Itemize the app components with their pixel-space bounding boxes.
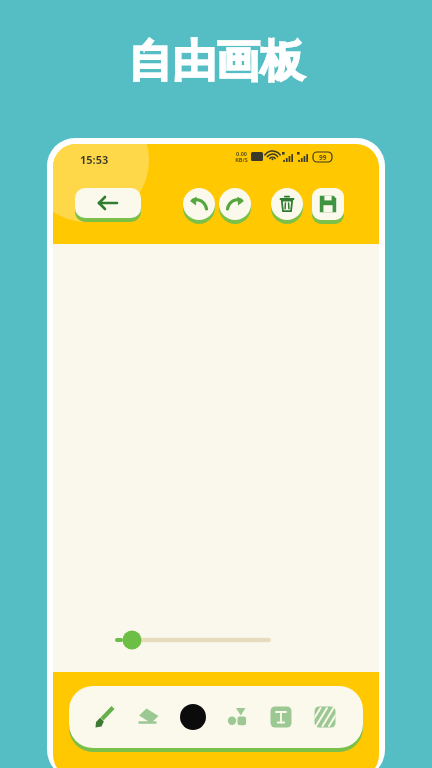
button[interactable]: Eraser (127, 686, 171, 748)
staticText: 0.00 KB/S (235, 150, 248, 163)
button[interactable]: Back (75, 188, 141, 222)
staticText: 99 (319, 153, 327, 162)
button[interactable]: Undo (183, 188, 215, 224)
button[interactable] (115, 627, 295, 653)
button[interactable]: Pattern (303, 686, 347, 748)
button[interactable]: Text (259, 686, 303, 748)
button[interactable]: Color (171, 686, 215, 748)
button[interactable]: Brush (83, 686, 127, 748)
button[interactable]: Redo (219, 188, 251, 224)
button[interactable]: Save (312, 188, 344, 224)
button[interactable]: Shapes (215, 686, 259, 748)
staticText: 自由画板 (128, 34, 304, 89)
staticText: 15:53 (80, 152, 109, 167)
button[interactable]: Delete (271, 188, 303, 224)
